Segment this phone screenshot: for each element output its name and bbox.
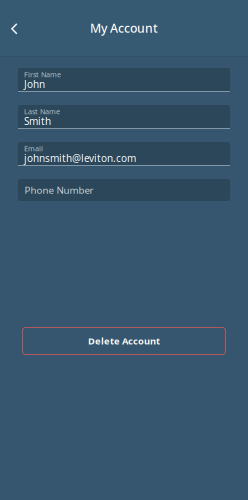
button[interactable]: Phone Number	[18, 179, 230, 201]
button[interactable]: Delete Account	[22, 327, 225, 354]
staticText: johnsmith@leviton.com	[24, 151, 136, 165]
button[interactable]: Last Name	[18, 105, 230, 129]
staticText: First Name	[24, 70, 61, 79]
staticText: Delete Account	[88, 335, 160, 347]
button[interactable]: First Name	[18, 68, 230, 92]
staticText: Last Name	[24, 107, 60, 116]
staticText: Smith	[24, 114, 51, 128]
staticText: John	[24, 77, 45, 91]
staticText: My Account	[90, 20, 158, 36]
button[interactable]: Back	[0, 10, 40, 46]
staticText: Email	[24, 144, 43, 153]
staticText: Phone Number	[24, 183, 93, 197]
button[interactable]: Email	[18, 142, 230, 166]
